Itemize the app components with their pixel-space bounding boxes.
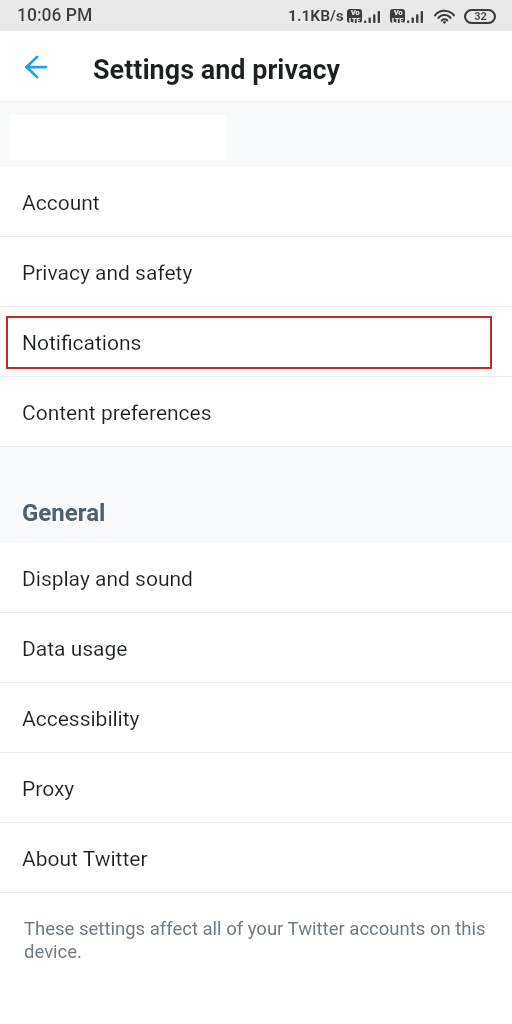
staticText: Content preferences	[22, 401, 212, 426]
staticText: General	[22, 499, 106, 527]
staticText: Vo	[394, 9, 403, 17]
button[interactable]: About Twitter	[0, 823, 512, 893]
staticText: Settings and privacy	[93, 54, 341, 86]
staticText: Accessibility	[22, 707, 140, 732]
button[interactable]: Display and sound	[0, 543, 512, 613]
staticText: Privacy and safety	[22, 261, 193, 286]
staticText: Proxy	[22, 777, 75, 802]
button[interactable]: Data usage	[0, 613, 512, 683]
staticText: LTE	[392, 17, 404, 23]
button[interactable]: Account	[0, 167, 512, 237]
button[interactable]: Content preferences	[0, 377, 512, 447]
staticText: Data usage	[22, 637, 128, 662]
staticText: About Twitter	[22, 847, 148, 872]
staticText: 32	[474, 10, 487, 23]
staticText: Account	[22, 191, 100, 216]
staticText: 1.1KB/s	[288, 7, 344, 25]
button[interactable]: Accessibility	[0, 683, 512, 753]
staticText: Notifications	[22, 331, 142, 356]
button[interactable]	[0, 102, 512, 167]
staticText: These settings affect all of your Twitte…	[24, 918, 490, 963]
button[interactable]: Back	[14, 45, 58, 89]
staticText: LTE	[349, 17, 361, 23]
staticText: 10:06 PM	[17, 5, 93, 26]
staticText: Display and sound	[22, 567, 193, 592]
staticText: Vo	[351, 9, 360, 17]
button[interactable]: Privacy and safety	[0, 237, 512, 307]
button[interactable]: Proxy	[0, 753, 512, 823]
button[interactable]: Notifications	[0, 307, 512, 377]
